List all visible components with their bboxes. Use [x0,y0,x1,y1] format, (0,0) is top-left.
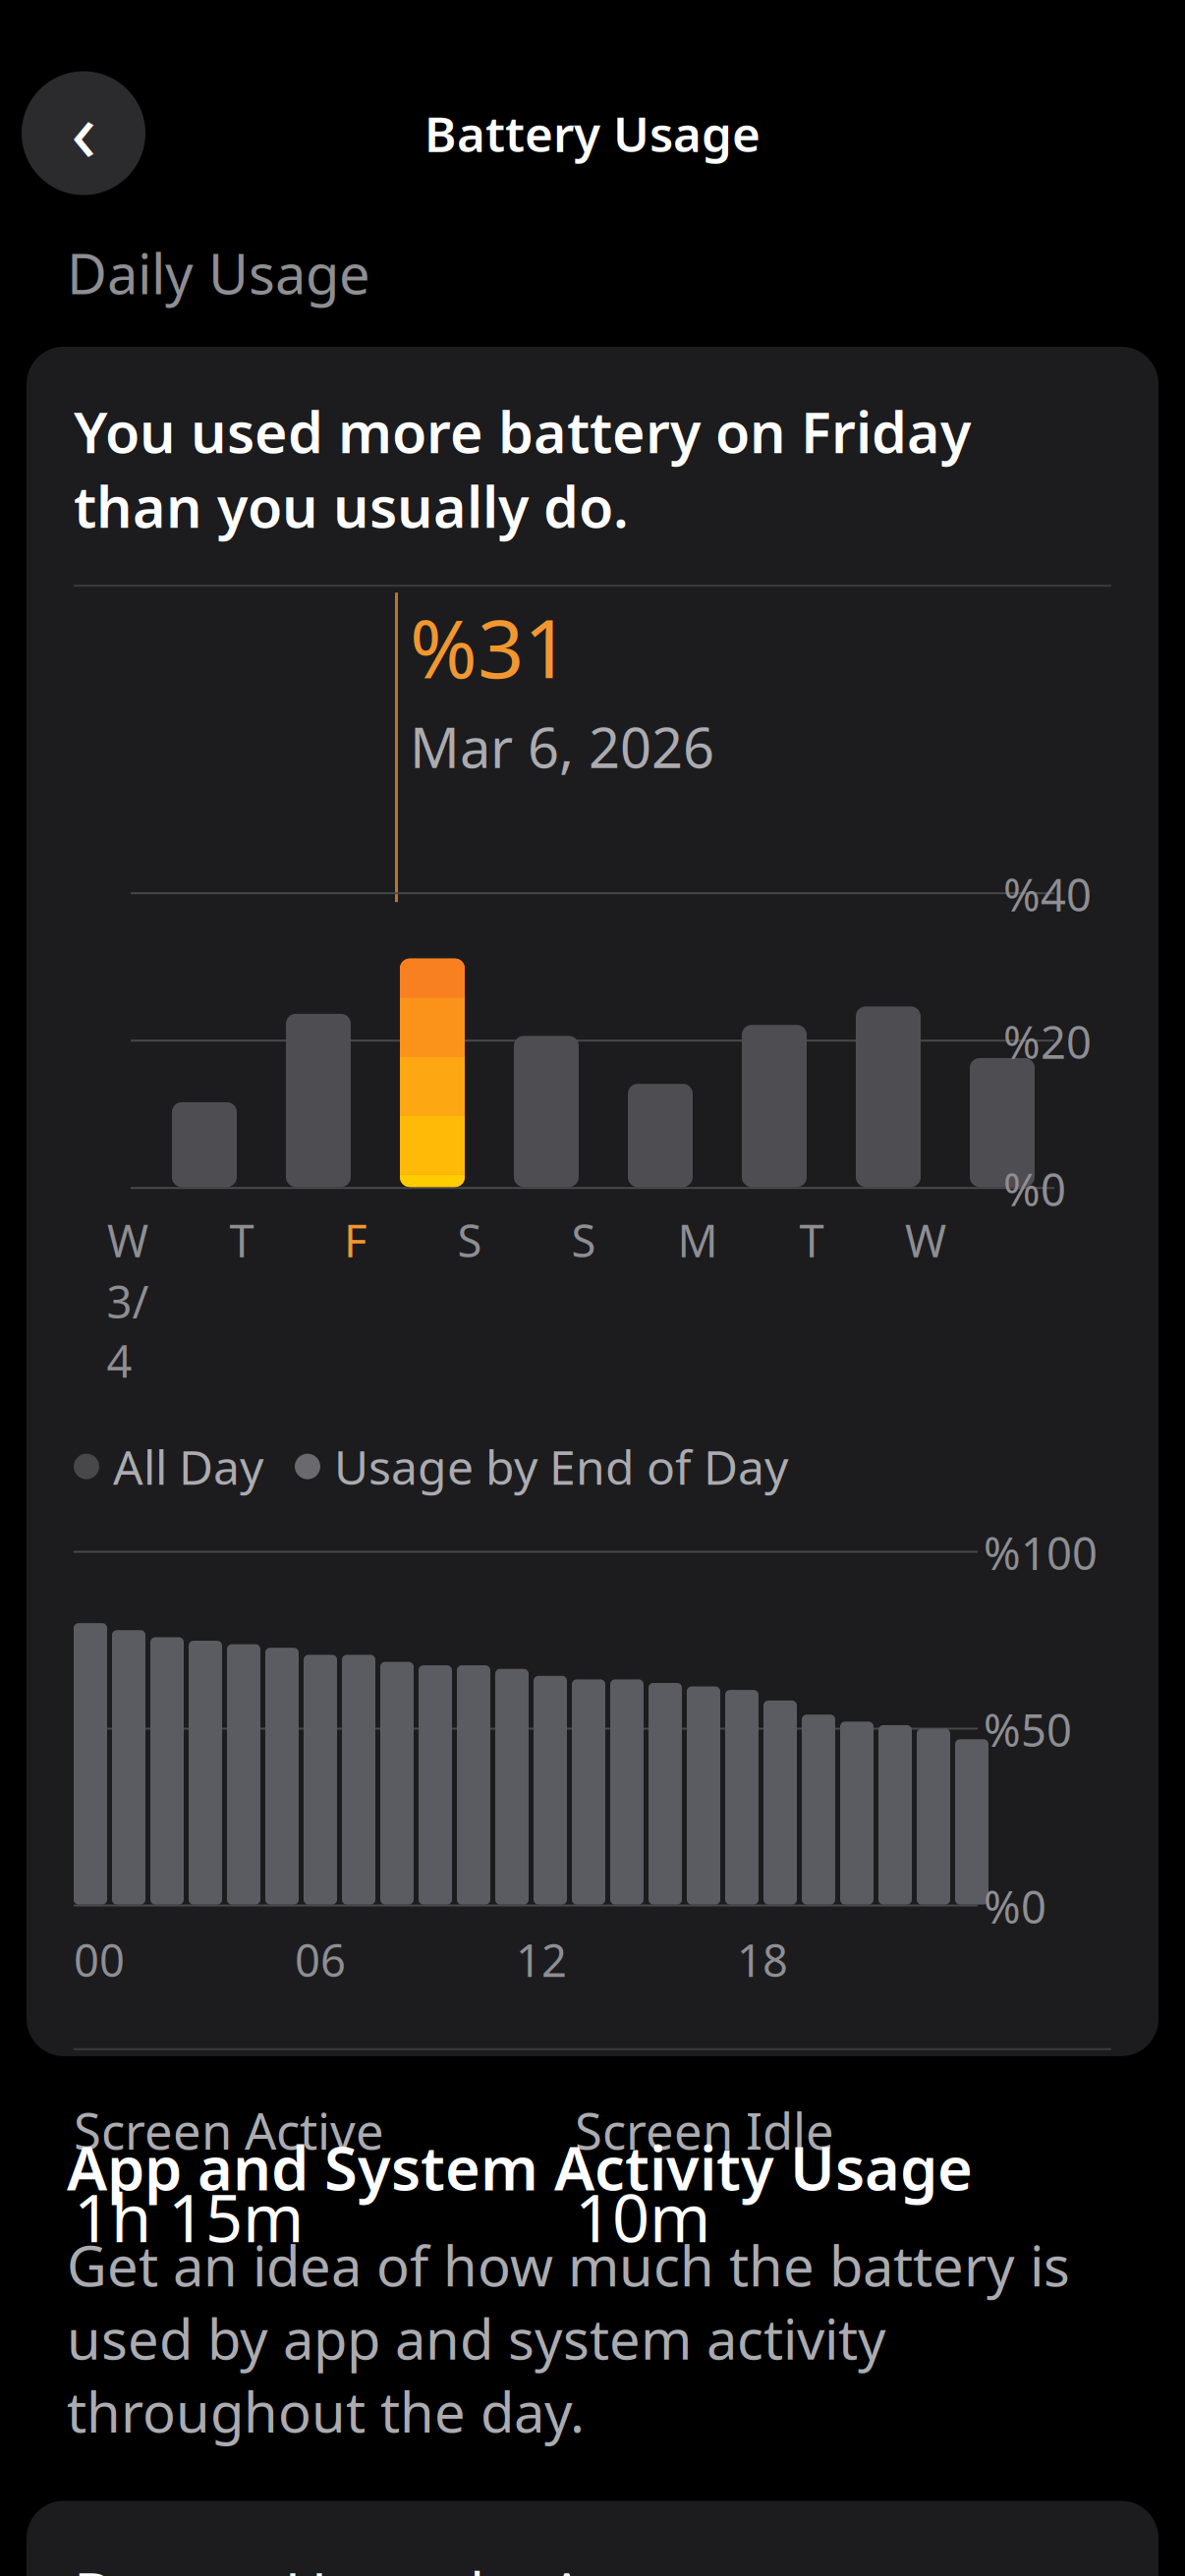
staticText: %31 [410,593,570,700]
staticText: %20 [1003,1012,1092,1071]
staticText: W [107,1211,148,1270]
staticText: Battery Usage by App [74,2554,655,2576]
staticText: 18 [737,1930,788,1989]
staticText: Daily Usage [67,236,370,309]
staticText: %40 [1003,865,1092,924]
staticText: Mar 6, 2026 [410,710,714,783]
staticText: 12 [516,1930,567,1989]
staticText: T [799,1211,824,1270]
button[interactable]: Back [22,71,145,195]
staticText: 10m [575,2173,710,2260]
staticText: Get an idea of how much the battery is u… [67,2229,1070,2448]
staticText: Screen Active [74,2097,384,2163]
staticText: Screen Idle [575,2097,834,2163]
staticText: 3/4 [107,1272,149,1390]
staticText: All Day [113,1435,263,1498]
staticText: You used more battery on Friday than you… [74,394,971,543]
button[interactable]: Battery Usage by App [27,2501,1158,2576]
staticText: %100 [984,1523,1098,1582]
staticText: 06 [295,1930,346,1989]
staticText: M [677,1211,718,1270]
staticText: F [344,1211,367,1270]
staticText: %0 [1003,1159,1066,1219]
staticText: Battery Usage [424,101,761,165]
staticText: %50 [984,1700,1072,1759]
staticText: S [571,1211,596,1270]
staticText: Usage by End of Day [334,1435,788,1498]
staticText: 00 [74,1930,125,1989]
staticText: T [229,1211,254,1270]
staticText: App and System Activity Usage [67,2127,973,2207]
staticText: S [457,1211,482,1270]
staticText: W [905,1211,946,1270]
staticText: 1h 15m [74,2173,304,2260]
staticText: ‹ [71,74,96,185]
staticText: %0 [984,1877,1046,1936]
